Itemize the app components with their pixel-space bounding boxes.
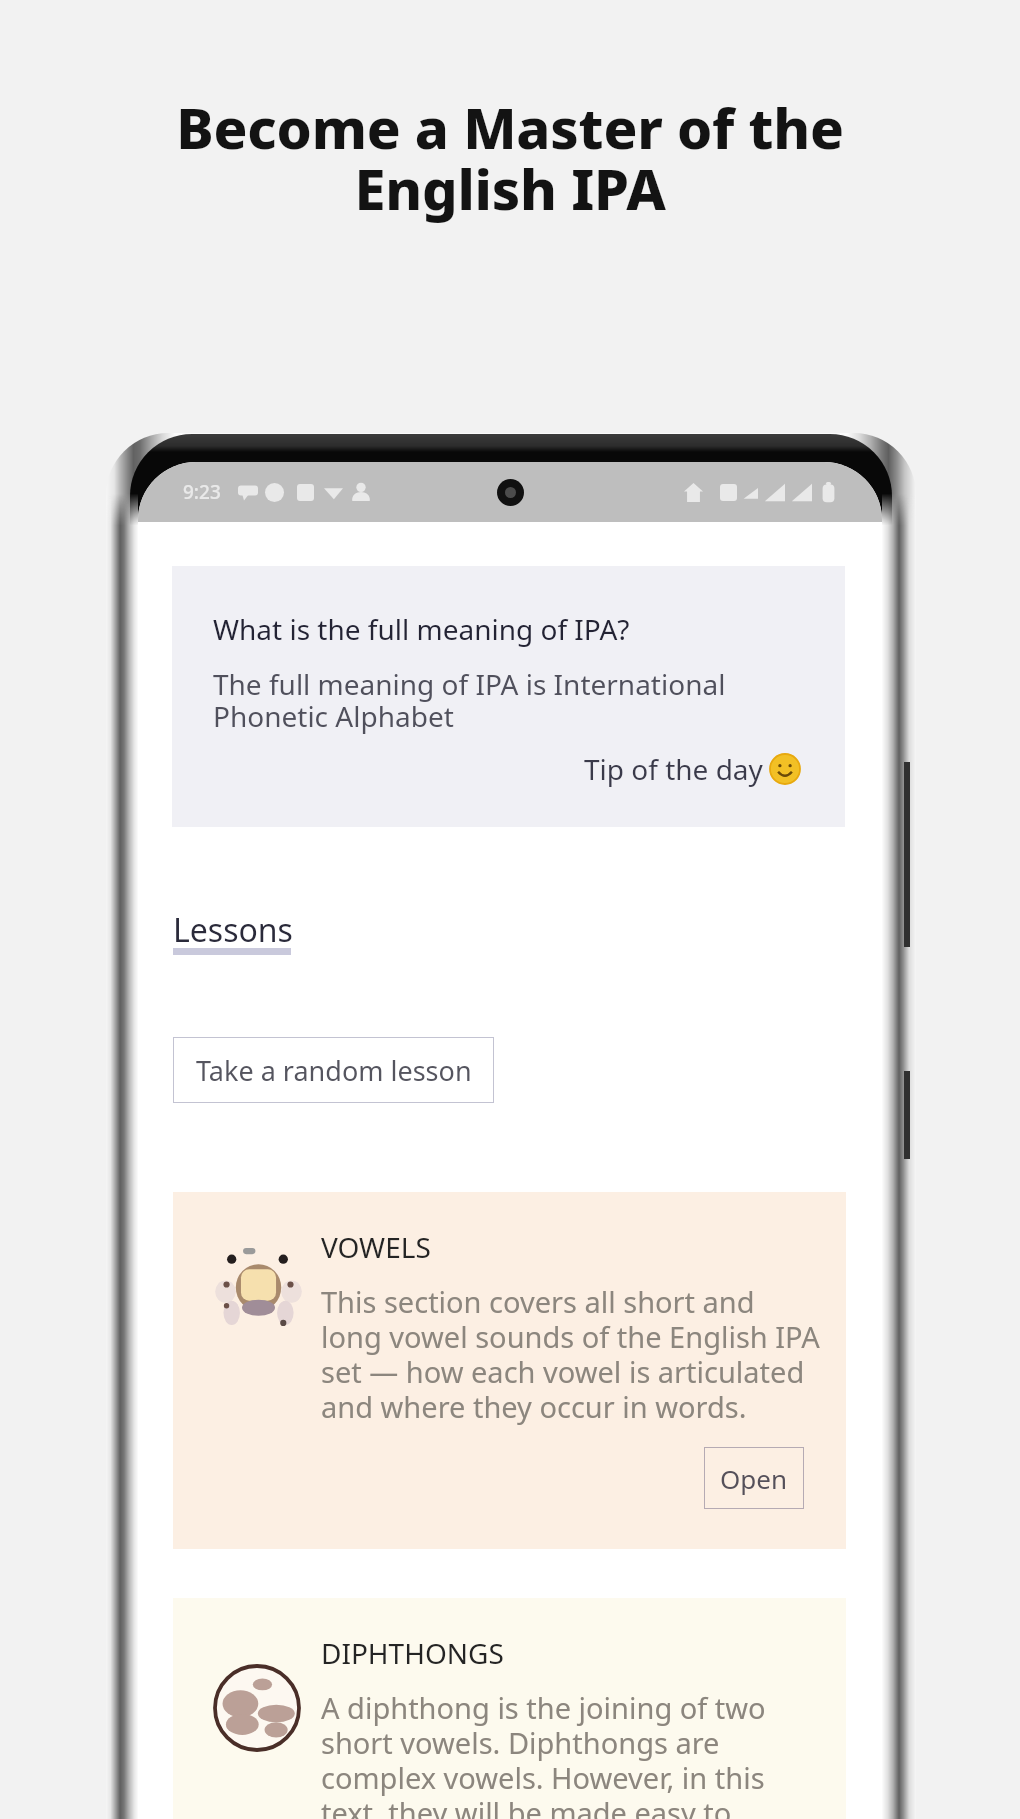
staticText: This section covers all short and long v… — [321, 1282, 820, 1427]
button[interactable]: Tip of the day card — [172, 566, 845, 827]
staticText: Become a Master of the English IPA — [0, 89, 1020, 226]
staticText: The full meaning of IPA is International… — [213, 665, 726, 735]
staticText: Take a random lesson — [196, 1052, 472, 1089]
staticText: VOWELS — [321, 1228, 431, 1266]
staticText: Open — [720, 1461, 788, 1496]
staticText: Lessons — [173, 908, 293, 952]
button[interactable]: Open the DIPHTHONGS lesson — [173, 1598, 846, 1819]
staticText: Tip of the day — [584, 750, 763, 788]
button[interactable]: Take a random lesson — [173, 1037, 494, 1103]
button[interactable]: Open the VOWELS lesson — [173, 1192, 846, 1549]
staticText: DIPHTHONGS — [321, 1634, 504, 1672]
staticText: A diphthong is the joining of two short … — [321, 1688, 766, 1819]
staticText: 9:23 — [183, 479, 221, 505]
staticText: What is the full meaning of IPA? — [213, 610, 630, 648]
button[interactable]: Open — [704, 1447, 804, 1509]
